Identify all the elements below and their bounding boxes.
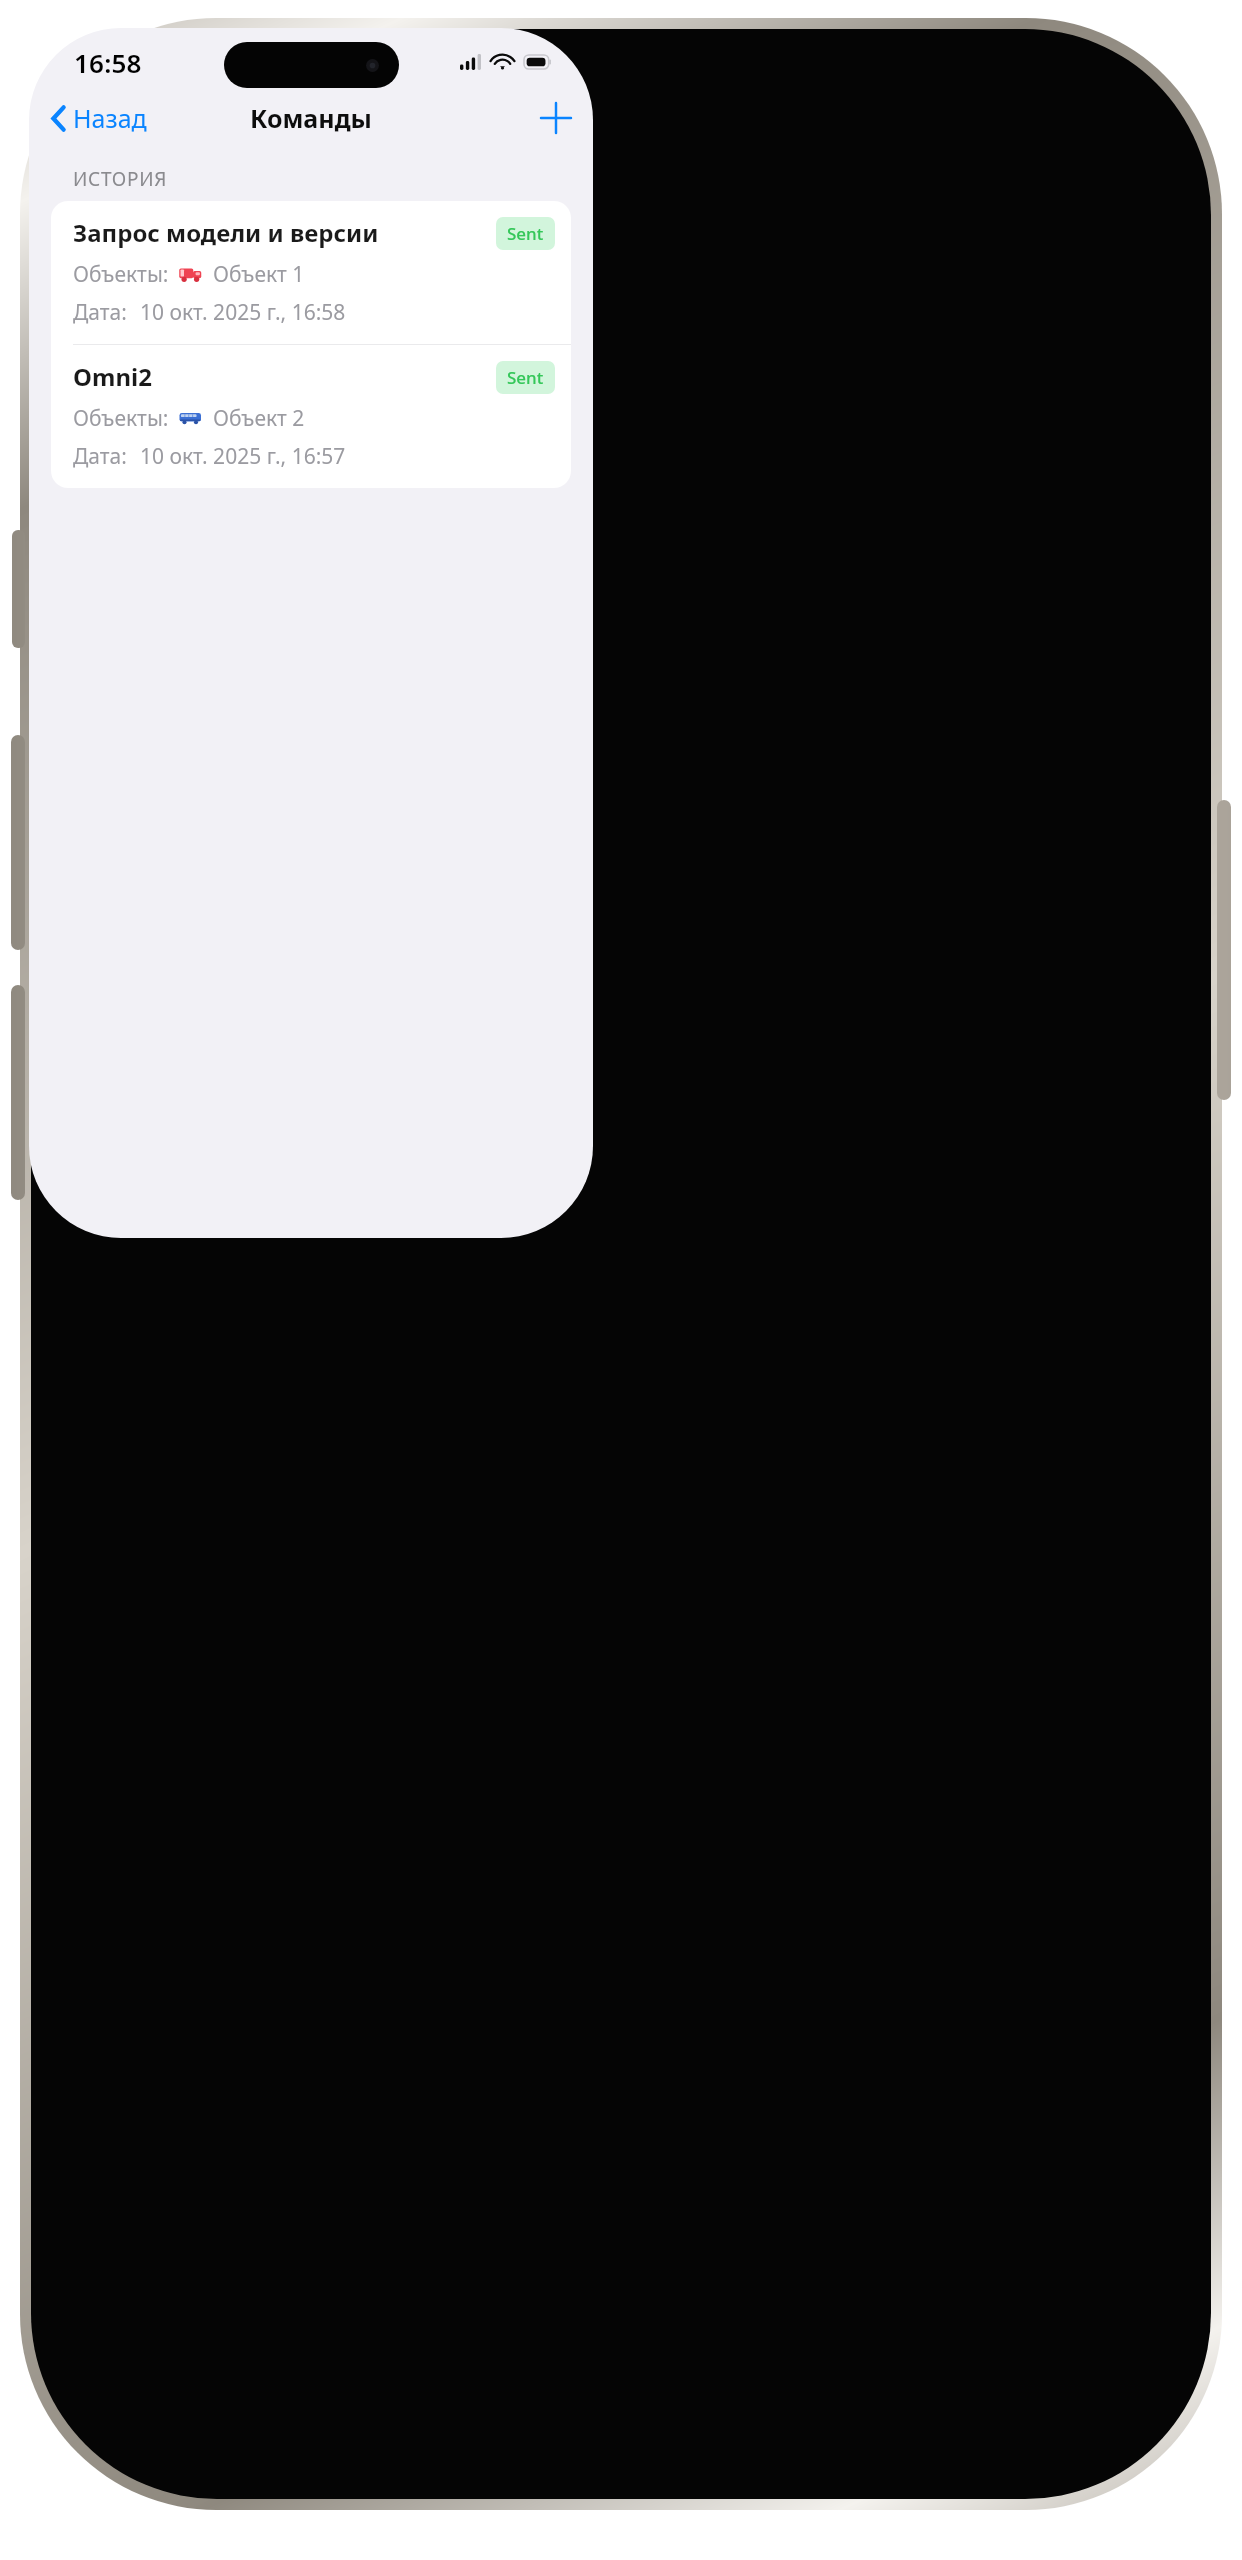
staticText: Дата:: [73, 442, 127, 471]
staticText: 10 окт. 2025 г., 16:57: [140, 442, 346, 471]
staticText: Запрос модели и версии: [73, 216, 379, 249]
staticText: 10 окт. 2025 г., 16:58: [140, 298, 346, 327]
staticText: Дата:: [73, 298, 127, 327]
staticText: Sent: [507, 222, 544, 245]
staticText: 16:58: [74, 45, 142, 80]
button[interactable]: Sent: [496, 361, 555, 394]
other: Автобус: [178, 410, 203, 427]
staticText: Omni2: [73, 360, 152, 393]
staticText: Назад: [73, 101, 147, 135]
staticText: Sent: [507, 366, 544, 389]
button[interactable]: Назад: [29, 95, 161, 141]
button[interactable]: Запрос модели и версии: [51, 201, 571, 344]
button[interactable]: Omni2: [51, 345, 571, 488]
button[interactable]: Добавить команду: [519, 93, 593, 143]
staticText: ИСТОРИЯ: [73, 166, 168, 192]
staticText: Объекты:: [73, 260, 169, 289]
staticText: Объекты:: [73, 404, 169, 433]
other: Грузовик: [178, 266, 203, 283]
staticText: Объект 1: [213, 260, 305, 289]
staticText: Команды: [250, 101, 372, 135]
button[interactable]: Sent: [496, 217, 555, 250]
staticText: Объект 2: [213, 404, 305, 433]
